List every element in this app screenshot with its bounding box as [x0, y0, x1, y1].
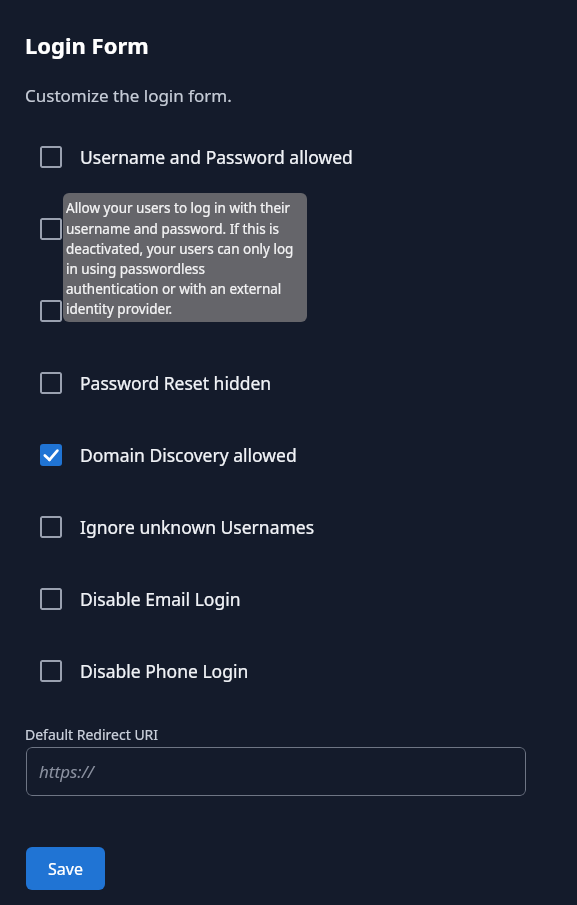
button[interactable]: Disable Phone Login: [40, 653, 249, 689]
staticText: Password Reset hidden: [80, 371, 272, 395]
button[interactable]: Ignore unknown Usernames: [40, 509, 315, 545]
button[interactable]: Save: [26, 847, 105, 890]
staticText: Allow your users to log in with their us…: [66, 199, 296, 318]
button[interactable]: Username and Password allowed: [40, 139, 353, 175]
button[interactable]: Disable Email Login: [40, 581, 241, 617]
staticText: Ignore unknown Usernames: [80, 515, 315, 539]
staticText: Domain Discovery allowed: [80, 443, 297, 467]
staticText: Login Form: [25, 30, 149, 60]
button[interactable]: https://: [26, 747, 526, 796]
staticText: Disable Phone Login: [80, 659, 249, 683]
staticText: Disable Email Login: [80, 587, 241, 611]
button[interactable]: Toggle option: [40, 293, 62, 329]
staticText: Username and Password allowed: [80, 145, 353, 169]
button[interactable]: Password Reset hidden: [40, 365, 272, 401]
staticText: Default Redirect URI: [25, 725, 159, 744]
staticText: Save: [48, 858, 83, 880]
staticText: Customize the login form.: [25, 84, 232, 107]
staticText: https://: [39, 760, 94, 783]
button[interactable]: Domain Discovery allowed: [40, 437, 297, 473]
button[interactable]: Toggle option: [40, 211, 62, 247]
